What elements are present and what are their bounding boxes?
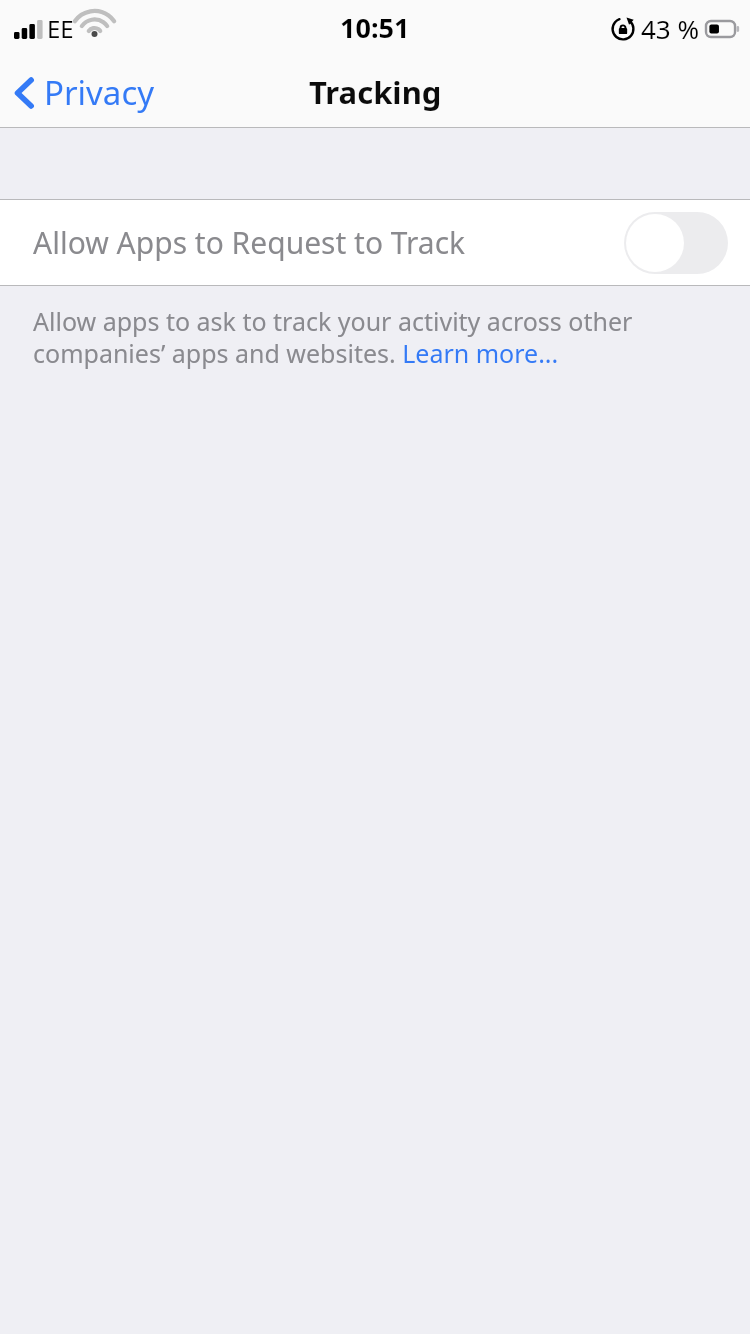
staticText: EE <box>47 12 74 45</box>
other: Allow Apps to Request to Track toggle, o… <box>624 212 728 274</box>
staticText: Privacy <box>44 70 155 115</box>
button[interactable]: Privacy <box>0 62 169 123</box>
button[interactable]: Allow Apps to Request to Track <box>0 200 750 285</box>
staticText: Allow apps to ask to track your activity… <box>33 304 710 370</box>
staticText: Tracking <box>309 71 442 113</box>
staticText: 10:51 <box>340 9 410 46</box>
staticText: Allow Apps to Request to Track <box>33 222 466 263</box>
staticText: 43 % <box>641 11 700 46</box>
